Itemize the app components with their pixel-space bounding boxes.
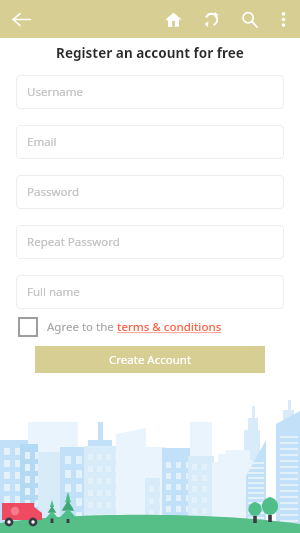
staticText: Email	[27, 134, 57, 150]
button[interactable]: Repeat Password	[16, 225, 284, 259]
button[interactable]: terms & conditions	[117, 319, 222, 335]
button[interactable]: Email	[16, 125, 284, 159]
staticText: Create Account	[109, 352, 192, 368]
button[interactable]: Username	[16, 75, 284, 109]
button[interactable]: Password	[16, 175, 284, 209]
staticText: Repeat Password	[27, 234, 120, 250]
button[interactable]: Agree to terms checkbox	[18, 317, 38, 337]
staticText: Password	[27, 184, 80, 200]
button[interactable]: Back	[5, 3, 37, 35]
staticText: Agree to the	[47, 319, 117, 335]
button[interactable]: Full name	[16, 275, 284, 309]
button[interactable]: Create Account	[35, 346, 265, 373]
staticText: terms & conditions	[117, 319, 222, 335]
staticText: Username	[27, 84, 83, 100]
button[interactable]: Home	[158, 4, 188, 34]
button[interactable]: Search	[234, 4, 264, 34]
button[interactable]: More options	[268, 4, 298, 34]
button[interactable]: Refresh	[196, 4, 226, 34]
staticText: Register an account for free	[0, 44, 300, 62]
staticText: Full name	[27, 284, 80, 300]
